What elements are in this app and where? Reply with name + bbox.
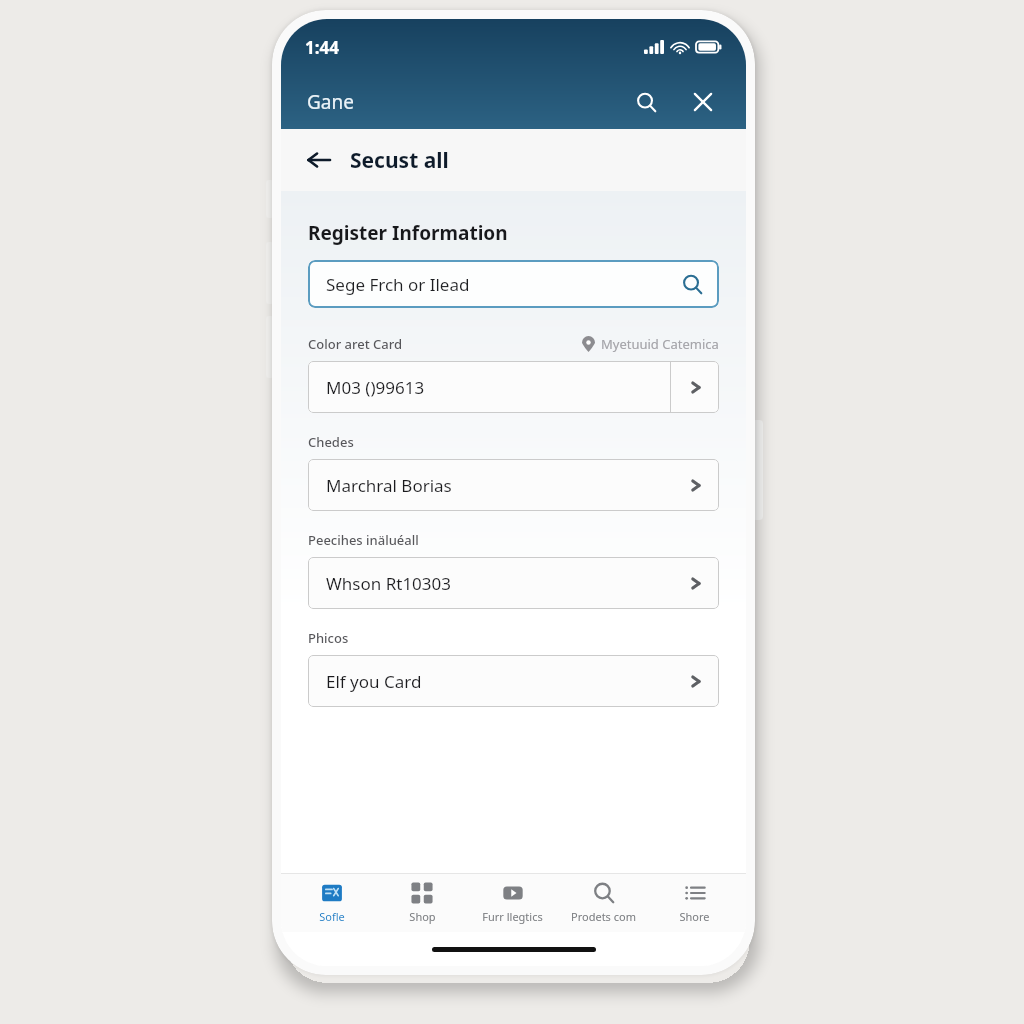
staticText: Furr llegtics [482,909,543,924]
staticText: Shop [409,909,436,924]
staticText: Color aret Card [308,335,403,353]
button[interactable]: Sofle [287,874,377,932]
staticText: Marchral Borias [326,474,452,497]
button[interactable]: Search [626,82,666,122]
staticText: Gane [307,89,354,115]
staticText: Elf you Card [326,670,422,693]
button[interactable]: Marchral Borias [308,459,719,511]
staticText: Myetuuid Catemica [601,335,719,353]
button[interactable]: Shore [649,874,740,932]
staticText: Phicos [308,629,349,647]
button[interactable]: Prodets com [558,874,649,932]
button[interactable]: Furr llegtics [467,874,558,932]
button[interactable]: Sege Frch or Ilead [308,260,719,308]
staticText: Register Information [308,220,508,246]
button[interactable]: Secust all [281,129,746,191]
button[interactable]: M03 ()99613 [308,361,719,413]
staticText: M03 ()99613 [326,376,425,399]
staticText: 1:44 [305,36,339,59]
staticText: Secust all [350,146,449,175]
button[interactable]: Elf you Card [308,655,719,707]
button[interactable]: Close [682,81,724,123]
staticText: Whson Rt10303 [326,572,452,595]
staticText: Sege Frch or Ilead [326,273,470,296]
staticText: Peecihes inäluéall [308,531,419,549]
staticText: Shore [679,909,710,924]
button[interactable]: Whson Rt10303 [308,557,719,609]
staticText: Prodets com [571,909,636,924]
staticText: Chedes [308,433,354,451]
button[interactable]: Shop [377,874,467,932]
staticText: Sofle [319,909,345,924]
